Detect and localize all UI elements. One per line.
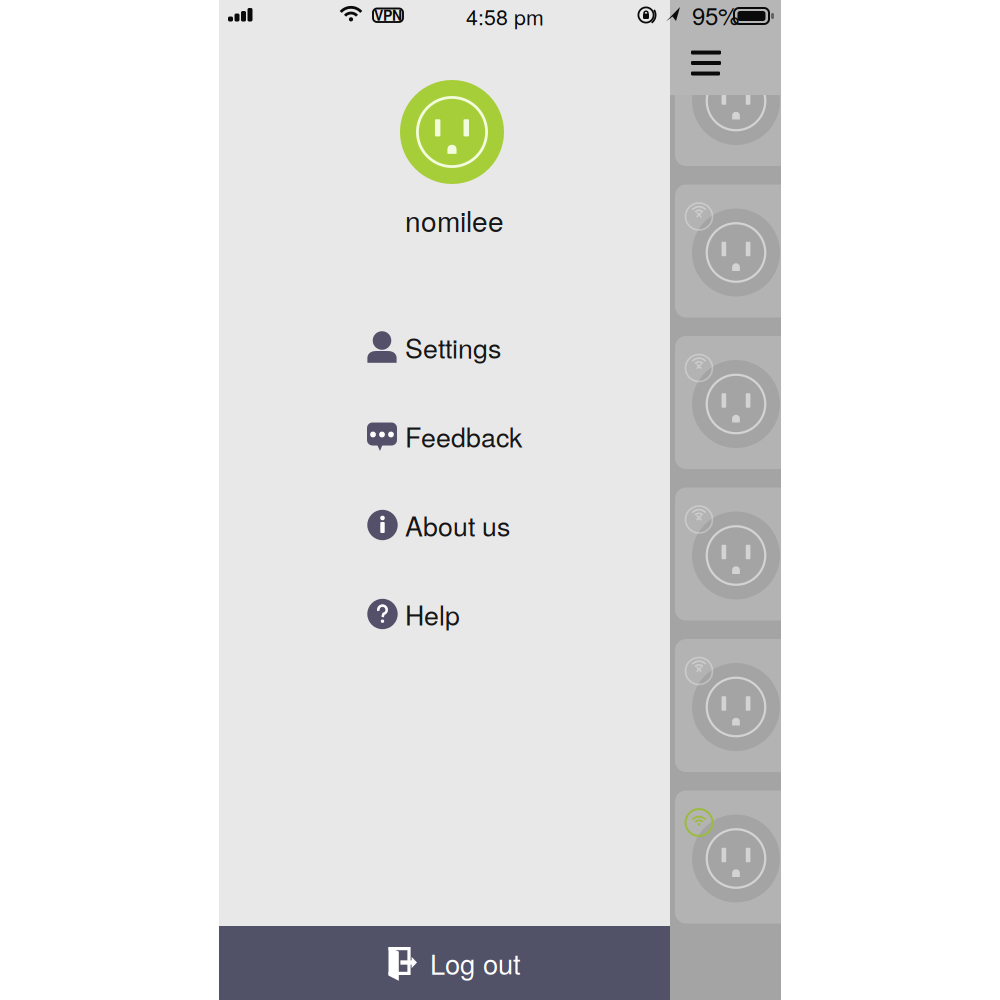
staticText: Log out: [430, 943, 521, 982]
staticText: 4:58 pm: [466, 1, 544, 31]
button[interactable]: About us: [219, 480, 670, 569]
staticText: 95%: [692, 0, 739, 32]
button[interactable]: Help: [219, 569, 670, 658]
staticText: Help: [405, 595, 460, 633]
staticText: Feedback: [405, 417, 522, 455]
staticText: About us: [405, 506, 510, 544]
button[interactable]: Settings: [219, 302, 670, 391]
button[interactable]: Menu: [0, 0, 1000, 1000]
staticText: nomilee: [405, 200, 504, 240]
staticText: VPN: [374, 5, 402, 25]
button[interactable]: Feedback: [219, 391, 670, 480]
button[interactable]: Log out: [0, 0, 1000, 1000]
staticText: Settings: [405, 328, 501, 366]
